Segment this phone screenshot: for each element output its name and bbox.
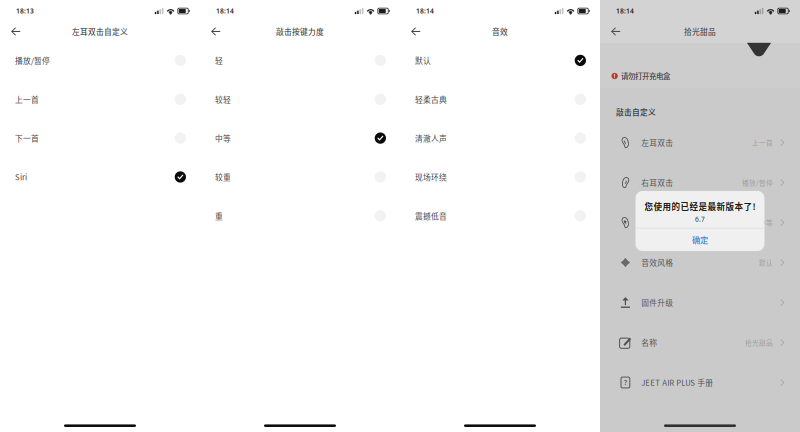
button[interactable]: ? xyxy=(600,362,800,402)
button[interactable]: 较重 xyxy=(200,158,400,196)
button[interactable]: Back xyxy=(0,22,33,41)
staticText: 18:14 xyxy=(616,7,634,15)
staticText: 右耳双击 xyxy=(641,177,673,188)
button[interactable]: 上一首 xyxy=(0,80,200,119)
staticText: 中等 xyxy=(759,218,773,227)
staticText: 现场环绕 xyxy=(415,171,447,183)
staticText: 重 xyxy=(215,210,223,221)
button[interactable]: Siri xyxy=(0,158,200,196)
staticText: 18:14 xyxy=(416,7,434,15)
button[interactable]: 播放/暂停 xyxy=(0,41,200,80)
button[interactable]: 较轻 xyxy=(200,80,400,119)
button[interactable]: 左耳双击 xyxy=(600,122,800,162)
button[interactable]: Back xyxy=(600,22,633,41)
button[interactable]: 名称 xyxy=(600,322,800,362)
button[interactable]: 音效风格 xyxy=(600,242,800,282)
staticText: 请勿打开充电盒 xyxy=(621,71,670,81)
button[interactable]: Back xyxy=(400,22,433,41)
staticText: 确定 xyxy=(692,234,708,246)
button[interactable]: 确定 xyxy=(635,228,764,251)
staticText: 拾光甜品 xyxy=(745,338,773,347)
button[interactable]: 右耳双击 xyxy=(600,162,800,202)
staticText: 中等 xyxy=(215,132,231,144)
staticText: 音效风格 xyxy=(641,257,673,268)
staticText: ! xyxy=(614,72,616,80)
button[interactable]: 默认 xyxy=(400,41,600,80)
staticText: 名称 xyxy=(641,337,657,348)
staticText: 较轻 xyxy=(215,94,231,105)
staticText: 默认 xyxy=(759,258,773,267)
button[interactable]: 中等 xyxy=(200,119,400,158)
staticText: 音效 xyxy=(492,26,508,37)
button[interactable]: 清澈人声 xyxy=(400,119,600,158)
staticText: 上一首 xyxy=(15,94,39,105)
button[interactable]: 震撼低音 xyxy=(400,196,600,235)
staticText: 默认 xyxy=(415,55,431,66)
button[interactable]: 轻柔古典 xyxy=(400,80,600,119)
button[interactable]: 重 xyxy=(200,196,400,235)
staticText: 拾光甜品 xyxy=(684,26,716,37)
staticText: JEET AIR PLUS 手册 xyxy=(641,377,713,388)
staticText: 清澈人声 xyxy=(415,132,447,144)
staticText: 播放/暂停 xyxy=(15,55,50,66)
staticText: ? xyxy=(624,378,627,387)
staticText: 18:14 xyxy=(216,7,234,15)
staticText: 您使用的已经是最新版本了! xyxy=(644,200,755,212)
staticText: Siri xyxy=(15,171,27,183)
staticText: 左耳双击自定义 xyxy=(72,26,128,37)
staticText: 固件升级 xyxy=(641,297,673,308)
staticText: 震撼低音 xyxy=(415,210,447,221)
staticText: 敲击按键力度 xyxy=(276,26,324,37)
staticText: 轻柔古典 xyxy=(415,94,447,105)
staticText: 下一首 xyxy=(15,132,39,144)
staticText: 播放/暂停 xyxy=(742,178,773,187)
button[interactable]: Back xyxy=(200,22,233,41)
staticText: 左耳双击 xyxy=(641,137,673,148)
staticText: 18:13 xyxy=(16,7,34,15)
staticText: 6.7 xyxy=(695,215,705,224)
button[interactable]: 下一首 xyxy=(0,119,200,158)
button[interactable]: 轻 xyxy=(200,41,400,80)
staticText: 较重 xyxy=(215,171,231,183)
button[interactable]: 左耳三击 xyxy=(600,202,800,242)
staticText: 敲击自定义 xyxy=(616,106,656,118)
button[interactable]: 固件升级 xyxy=(600,282,800,322)
button[interactable]: 现场环绕 xyxy=(400,158,600,196)
staticText: 上一首 xyxy=(752,138,773,147)
staticText: 轻 xyxy=(215,55,223,66)
